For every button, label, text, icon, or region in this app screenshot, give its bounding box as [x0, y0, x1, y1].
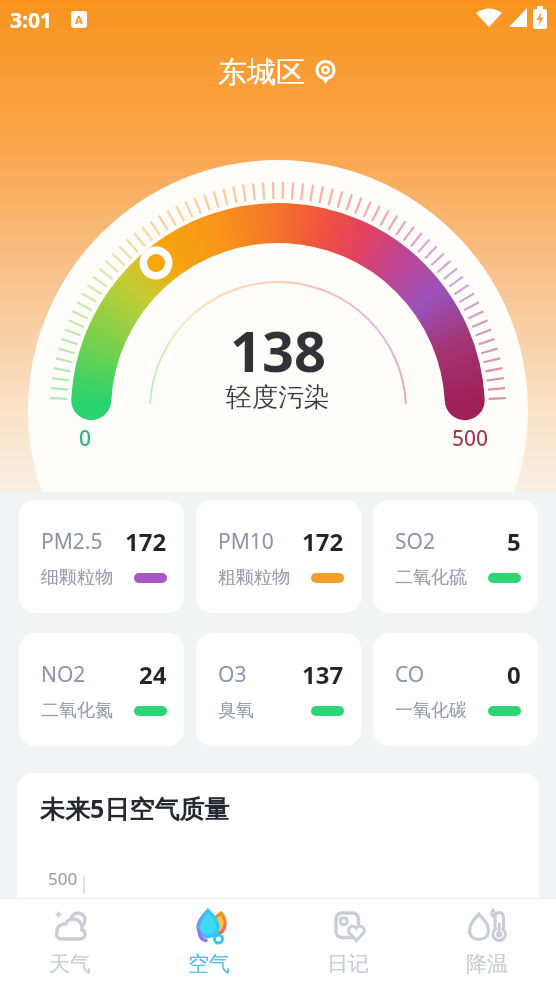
staticText: 天气	[49, 951, 91, 977]
staticText: 细颗粒物	[41, 566, 113, 589]
staticText: 空气	[188, 951, 230, 977]
staticText: 137	[302, 658, 344, 691]
button[interactable]: 东城区	[0, 52, 556, 92]
staticText: 138	[230, 312, 327, 388]
staticText: 0	[79, 424, 92, 453]
staticText: 轻度污染	[226, 381, 330, 414]
staticText: PM10	[218, 527, 274, 556]
staticText: 降温	[466, 951, 508, 977]
button[interactable]: PM2.5	[19, 500, 184, 613]
staticText: 一氧化碳	[395, 699, 467, 722]
button[interactable]: 天气	[0, 898, 139, 988]
button[interactable]: NO2	[19, 633, 184, 746]
staticText: 500	[452, 424, 489, 453]
staticText: 0	[507, 658, 521, 691]
button[interactable]: 空气	[139, 898, 278, 988]
staticText: 粗颗粒物	[218, 566, 290, 589]
staticText: CO	[395, 660, 425, 689]
button[interactable]: 未来5日空气质量	[17, 773, 539, 988]
staticText: 东城区	[218, 54, 305, 91]
staticText: 5	[507, 525, 521, 558]
staticText: 172	[125, 525, 167, 558]
staticText: 日记	[327, 951, 369, 977]
button[interactable]: PM10	[196, 500, 361, 613]
staticText: 臭氧	[218, 699, 254, 722]
button[interactable]: CO	[373, 633, 538, 746]
button[interactable]: 降温	[417, 898, 556, 988]
staticText: 172	[302, 525, 344, 558]
staticText: O3	[218, 660, 247, 689]
staticText: SO2	[395, 527, 435, 556]
button[interactable]: O3	[196, 633, 361, 746]
staticText: 3:01	[10, 6, 52, 35]
staticText: 24	[139, 658, 167, 691]
staticText: PM2.5	[41, 527, 103, 556]
staticText: 500	[48, 867, 78, 890]
staticText: 二氧化硫	[395, 566, 467, 589]
button[interactable]: SO2	[373, 500, 538, 613]
button[interactable]: 日记	[278, 898, 417, 988]
staticText: A	[75, 12, 83, 27]
staticText: NO2	[41, 660, 86, 689]
staticText: 未来5日空气质量	[40, 791, 230, 825]
staticText: 二氧化氮	[41, 699, 113, 722]
